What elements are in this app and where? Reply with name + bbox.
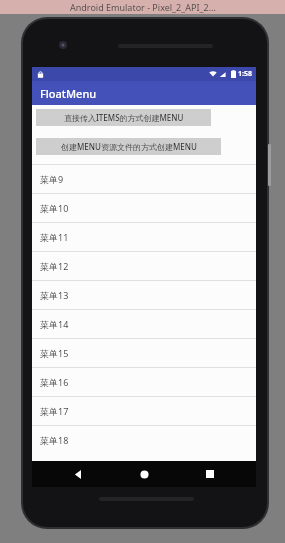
button[interactable]: Back (58, 461, 98, 487)
button[interactable]: 菜单17 (32, 397, 256, 425)
staticText: Android Emulator - Pixel_2_API_2... (70, 1, 216, 13)
staticText: 菜单12 (40, 260, 69, 272)
staticText: 菜单10 (40, 202, 69, 214)
staticText: 菜单17 (40, 405, 69, 417)
button[interactable]: 菜单10 (32, 194, 256, 222)
button[interactable]: 创建MENU资源文件的方式创建MENU (36, 138, 221, 155)
staticText: 菜单14 (40, 318, 69, 330)
staticText: 创建MENU资源文件的方式创建MENU (61, 141, 197, 152)
staticText: 直接传入ITEMS的方式创建MENU (64, 112, 184, 123)
button[interactable]: 直接传入ITEMS的方式创建MENU (36, 109, 211, 126)
staticText: 菜单15 (40, 347, 69, 359)
staticText: 1:58 (238, 69, 252, 79)
button[interactable]: Recent apps (190, 461, 230, 487)
button[interactable]: 菜单9 (32, 165, 256, 193)
button[interactable]: 菜单14 (32, 310, 256, 338)
button[interactable]: 菜单11 (32, 223, 256, 251)
button[interactable]: 菜单13 (32, 281, 256, 309)
staticText: 菜单13 (40, 289, 69, 301)
staticText: 菜单18 (40, 434, 69, 446)
staticText: 菜单16 (40, 376, 69, 388)
button[interactable]: 菜单12 (32, 252, 256, 280)
staticText: 菜单11 (40, 231, 69, 243)
staticText: FloatMenu (40, 86, 97, 101)
button[interactable]: Home (124, 461, 164, 487)
button[interactable]: 菜单16 (32, 368, 256, 396)
button[interactable]: 菜单15 (32, 339, 256, 367)
button[interactable]: 菜单18 (32, 426, 256, 454)
staticText: 菜单9 (40, 173, 64, 185)
